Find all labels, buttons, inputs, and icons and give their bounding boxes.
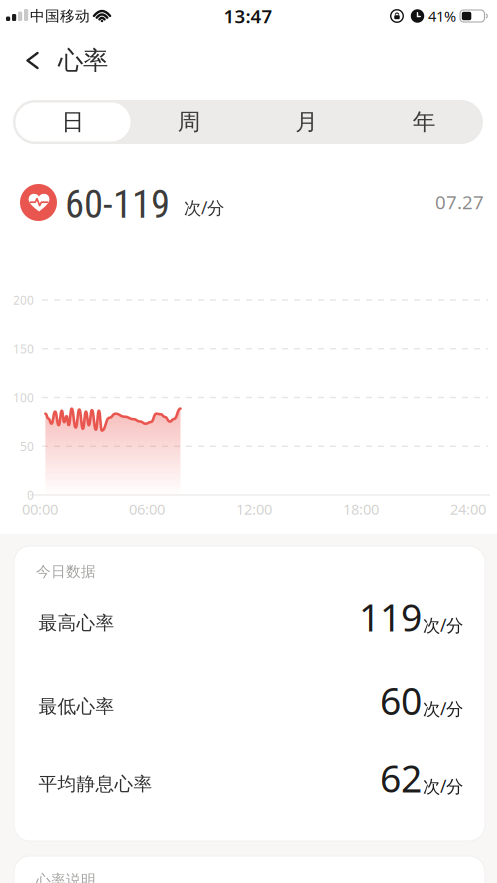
staticText: 24:00 xyxy=(450,499,486,519)
staticText: 13:47 xyxy=(223,4,272,28)
staticText: 62 xyxy=(380,753,422,803)
staticText: 最低心率 xyxy=(38,695,114,718)
button[interactable]: 周 xyxy=(130,100,248,144)
button[interactable]: 月 xyxy=(248,100,365,144)
staticText: 今日数据 xyxy=(36,562,96,580)
staticText: 心率 xyxy=(58,45,108,76)
staticText: 次/分 xyxy=(423,613,463,636)
staticText: 07.27 xyxy=(435,190,484,214)
staticText: 150 xyxy=(13,341,34,357)
staticText: 200 xyxy=(13,292,34,308)
staticText: 60 xyxy=(380,676,422,725)
staticText: 06:00 xyxy=(129,499,165,519)
staticText: 18:00 xyxy=(343,499,379,519)
button[interactable]: 年 xyxy=(365,100,483,144)
staticText: 100 xyxy=(13,389,34,405)
staticText: 月 xyxy=(295,108,318,136)
button[interactable]: Back xyxy=(0,40,48,81)
staticText: 日 xyxy=(61,108,84,136)
staticText: 次/分 xyxy=(184,196,224,219)
button[interactable]: 日 xyxy=(15,102,130,141)
staticText: 119 xyxy=(359,592,422,642)
staticText: 0 xyxy=(27,487,34,503)
staticText: 50 xyxy=(20,438,34,454)
staticText: 次/分 xyxy=(423,774,463,797)
staticText: 心率说明 xyxy=(36,871,96,883)
staticText: 年 xyxy=(413,108,436,136)
staticText: 次/分 xyxy=(423,697,463,720)
staticText: 41% xyxy=(428,6,456,26)
staticText: 60-119 xyxy=(65,182,170,227)
staticText: 中国移动 xyxy=(30,7,90,25)
staticText: 周 xyxy=(178,108,201,136)
staticText: 平均静息心率 xyxy=(38,772,152,795)
staticText: 12:00 xyxy=(236,499,272,519)
staticText: 00:00 xyxy=(22,499,58,519)
staticText: 最高心率 xyxy=(38,611,114,634)
